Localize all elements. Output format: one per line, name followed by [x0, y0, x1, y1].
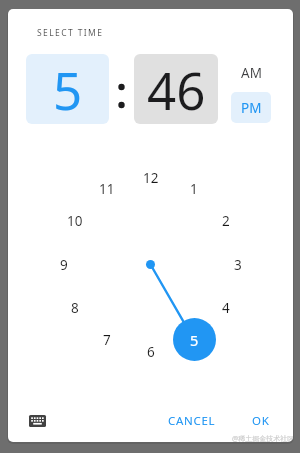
staticText: 5 — [53, 55, 83, 124]
staticText: 12 — [143, 169, 159, 187]
staticText: @稀土掘金技术社区 — [232, 434, 293, 442]
staticText: 3 — [234, 256, 242, 274]
staticText: 11 — [99, 180, 115, 198]
staticText: PM — [241, 99, 262, 117]
staticText: 2 — [222, 212, 230, 230]
staticText: 46 — [147, 55, 206, 124]
button[interactable]: 5 — [173, 318, 216, 361]
button[interactable]: 46 — [134, 54, 218, 124]
staticText: OK — [252, 413, 270, 429]
button[interactable]: CANCEL — [158, 407, 226, 435]
staticText: AM — [241, 64, 262, 82]
staticText: 1 — [190, 180, 198, 198]
staticText: 7 — [103, 331, 111, 349]
staticText: 8 — [71, 299, 79, 317]
staticText: 9 — [60, 256, 68, 274]
button[interactable]: 5 — [26, 54, 109, 124]
staticText: 5 — [190, 330, 199, 350]
button[interactable]: AM — [231, 57, 271, 88]
staticText: 10 — [67, 212, 83, 230]
button[interactable]: OK — [243, 407, 279, 435]
staticText: 4 — [222, 299, 230, 317]
staticText: 6 — [147, 343, 155, 361]
staticText: SELECT TIME — [37, 27, 104, 39]
button[interactable]: PM — [231, 92, 271, 123]
button[interactable] — [29, 415, 46, 427]
staticText: CANCEL — [168, 413, 216, 429]
